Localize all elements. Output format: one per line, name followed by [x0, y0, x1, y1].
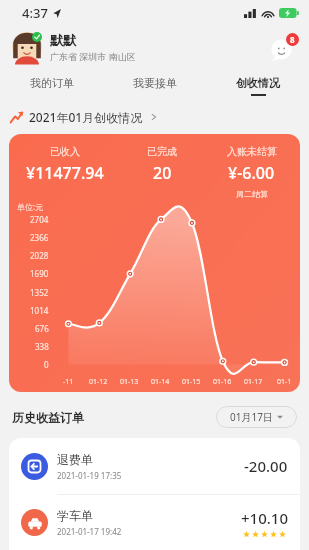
- staticText: 2021年01月创收情况: [29, 109, 143, 125]
- staticText: 1690: [30, 268, 49, 279]
- staticText: 我要接单: [133, 76, 177, 90]
- staticText: 学车单: [57, 508, 93, 523]
- staticText: -11: [63, 377, 74, 387]
- button[interactable]: 01月17日: [216, 406, 297, 428]
- staticText: 创收情况: [236, 76, 280, 90]
- button[interactable]: 2021年01月创收情况: [10, 104, 309, 130]
- staticText: 01-16: [213, 377, 232, 387]
- button[interactable]: 默默: [12, 32, 136, 62]
- staticText: 2028: [30, 250, 49, 261]
- staticText: 入账未结算: [227, 145, 277, 158]
- staticText: 01-12: [89, 377, 108, 387]
- staticText: 已收入: [50, 145, 80, 158]
- staticText: 退费单: [57, 452, 93, 467]
- staticText: 338: [35, 341, 49, 352]
- staticText: 01-13: [120, 377, 139, 387]
- staticText: 2366: [30, 232, 49, 243]
- staticText: ¥-6.00: [228, 162, 275, 184]
- staticText: 4:37: [22, 4, 48, 22]
- staticText: 01-14: [151, 377, 170, 387]
- staticText: 8: [290, 34, 295, 45]
- staticText: 01-17: [244, 377, 263, 387]
- staticText: 广东省 深圳市 南山区: [50, 50, 136, 62]
- staticText: 01-15: [182, 377, 201, 387]
- button[interactable]: 创收情况: [206, 68, 309, 104]
- staticText: 2021-01-17 19:42: [57, 526, 122, 537]
- staticText: 历史收益订单: [12, 410, 84, 425]
- staticText: 676: [35, 323, 49, 334]
- staticText: 20: [153, 162, 172, 184]
- button[interactable]: 我的订单: [0, 68, 103, 104]
- staticText: 1014: [30, 305, 49, 316]
- staticText: 2021-01-19 17:35: [57, 470, 122, 481]
- staticText: 单位:元: [17, 201, 44, 212]
- button[interactable]: 学车单: [9, 495, 300, 550]
- staticText: 周二结算: [236, 189, 268, 199]
- staticText: 1352: [30, 287, 49, 298]
- staticText: 我的订单: [30, 76, 74, 90]
- button[interactable]: 已收入: [9, 134, 300, 392]
- staticText: 0: [44, 359, 49, 370]
- staticText: 2704: [30, 214, 49, 225]
- staticText: 默默: [50, 32, 76, 48]
- button[interactable]: 退费单: [9, 438, 300, 494]
- button[interactable]: Messages: [271, 33, 299, 61]
- staticText: 已完成: [147, 145, 177, 158]
- staticText: ¥11477.94: [26, 162, 104, 184]
- staticText: 01-1: [277, 377, 292, 387]
- button[interactable]: 我要接单: [103, 68, 206, 104]
- staticText: +10.10: [241, 508, 288, 528]
- staticText: -20.00: [244, 456, 288, 476]
- staticText: 01月17日: [230, 410, 273, 424]
